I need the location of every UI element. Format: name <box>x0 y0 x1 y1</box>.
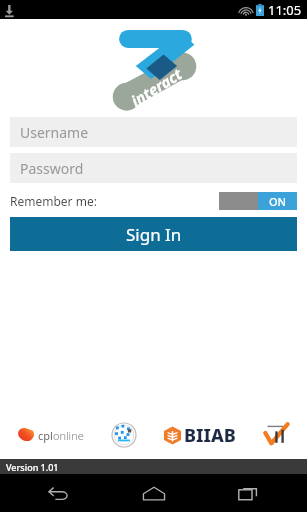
button[interactable]: Remember me toggle, on <box>219 192 297 210</box>
staticText: cpl <box>38 428 53 443</box>
button[interactable]: Back <box>24 474 94 512</box>
staticText: online <box>53 428 84 443</box>
staticText: interact <box>127 63 186 111</box>
staticText: 11:05 <box>268 1 302 19</box>
button[interactable]: Password <box>10 153 297 183</box>
staticText: ON <box>269 194 287 209</box>
button[interactable]: Recent apps <box>213 474 283 512</box>
staticText: Version 1.01 <box>6 461 59 473</box>
button[interactable]: Sign In <box>10 217 297 251</box>
staticText: Remember me: <box>10 193 97 209</box>
staticText: Sign In <box>126 223 182 246</box>
staticText: Password <box>20 159 84 178</box>
button[interactable]: Username <box>10 117 297 147</box>
staticText: BIIAB <box>184 423 236 448</box>
button[interactable]: Home <box>119 474 189 512</box>
staticText: Username <box>20 123 89 142</box>
